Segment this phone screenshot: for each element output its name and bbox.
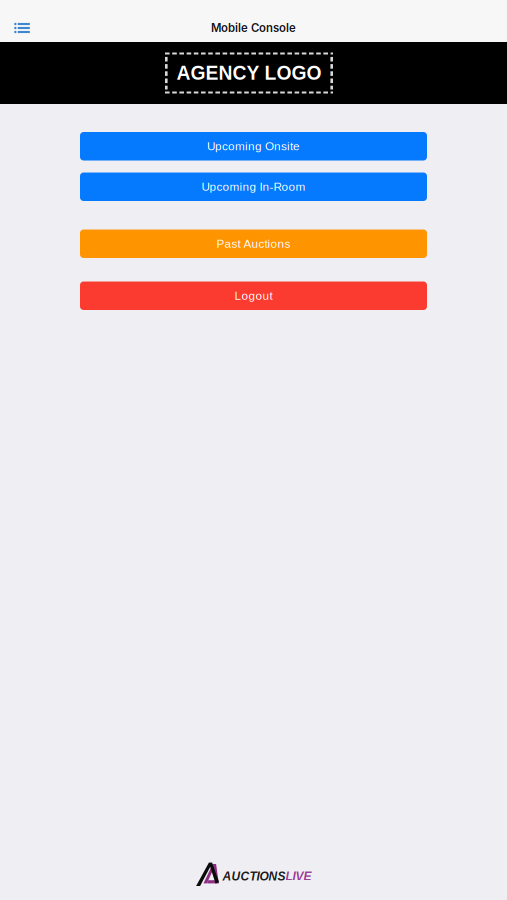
staticText: Mobile Console: [211, 21, 296, 35]
button[interactable]: Menu: [0, 14, 44, 42]
button[interactable]: Past Auctions: [80, 229, 427, 258]
staticText: Past Auctions: [216, 237, 290, 250]
staticText: AGENCY LOGO: [176, 62, 321, 84]
staticText: AUCTIONS: [222, 870, 285, 883]
button[interactable]: Upcoming Onsite: [80, 132, 427, 160]
button[interactable]: Upcoming In-Room: [80, 172, 427, 201]
staticText: Logout: [234, 289, 272, 302]
staticText: Upcoming In-Room: [201, 180, 305, 193]
staticText: Upcoming Onsite: [207, 140, 300, 153]
button[interactable]: Logout: [80, 281, 427, 310]
staticText: LIVE: [285, 870, 311, 883]
